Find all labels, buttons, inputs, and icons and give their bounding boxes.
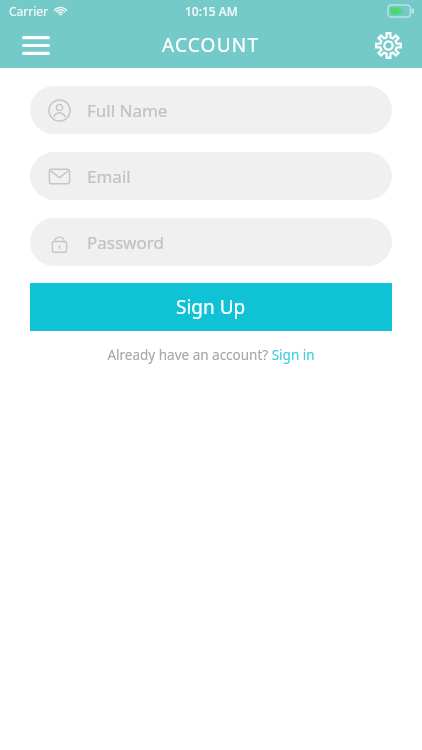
staticText: Password — [87, 231, 164, 254]
button[interactable]: Sign Up — [30, 283, 392, 331]
staticText: Already have an account? Sign in — [107, 346, 315, 364]
staticText: 10:15 AM — [185, 3, 238, 19]
staticText: ACCOUNT — [162, 32, 260, 58]
staticText: Full Name — [87, 99, 168, 122]
button[interactable]: Menu — [12, 22, 60, 68]
staticText: Carrier — [9, 3, 49, 19]
button[interactable]: Email — [30, 152, 392, 200]
button[interactable]: Full Name — [30, 86, 392, 134]
button[interactable]: Already have an account? Sign in — [99, 344, 323, 366]
button[interactable]: Password — [30, 218, 392, 266]
staticText: Sign Up — [176, 294, 246, 320]
staticText: Email — [87, 165, 131, 188]
button[interactable]: Settings — [364, 22, 412, 68]
